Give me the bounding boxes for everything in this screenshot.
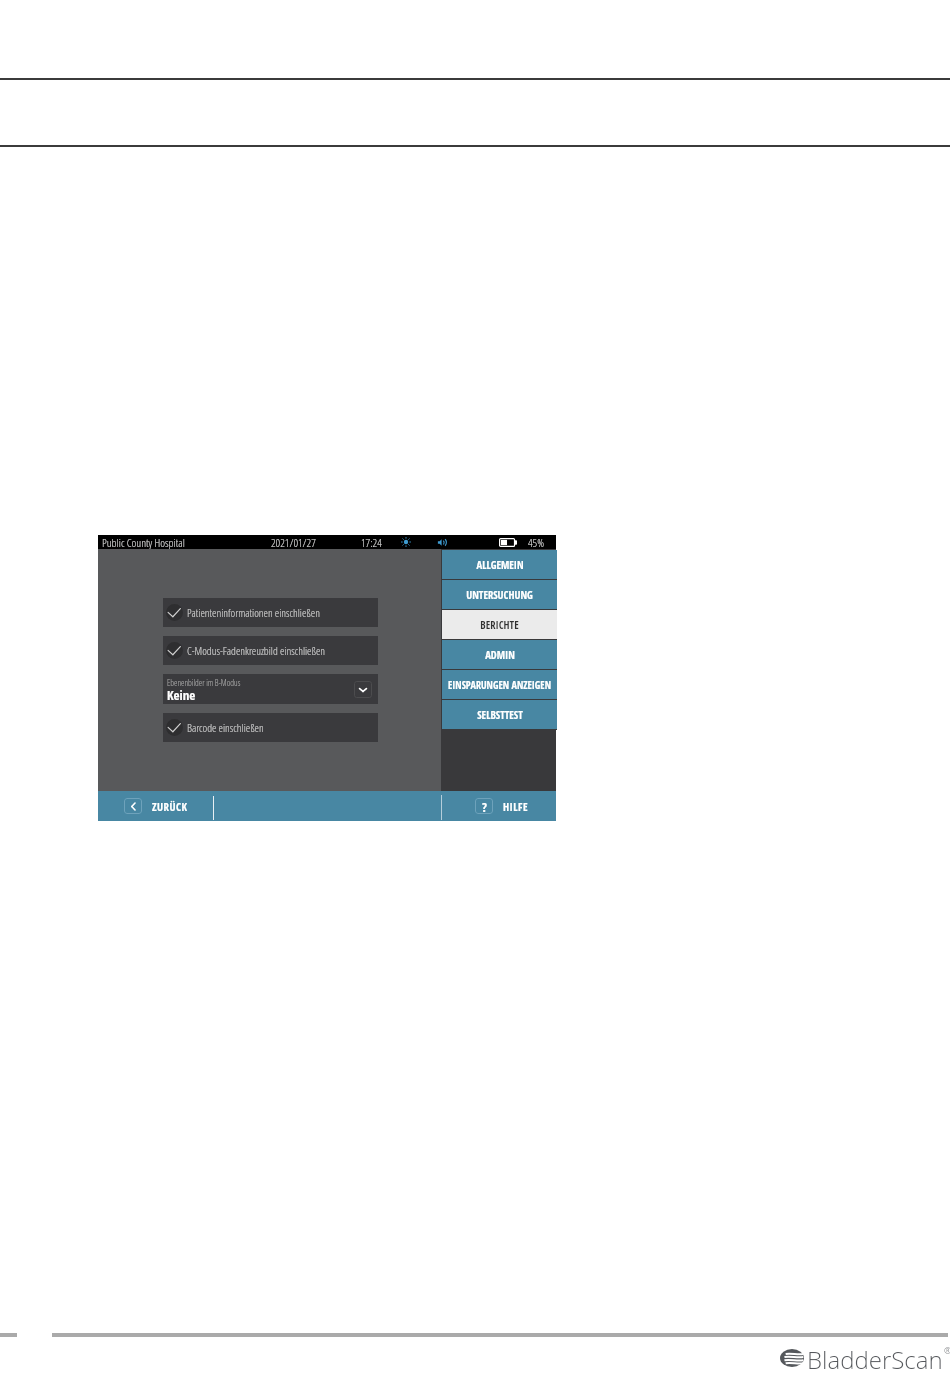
button[interactable]: Barcode einschließen [163, 713, 378, 742]
button[interactable]: EINSPARUNGEN ANZEIGEN [442, 670, 557, 700]
staticText: ? [482, 798, 487, 814]
staticText: UNTERSUCHUNG [466, 588, 533, 602]
staticText: Patienteninformationen einschließen [187, 605, 320, 620]
staticText: C-Modus-Fadenkreuzbild einschließen [187, 643, 326, 658]
staticText: Public County Hospital [102, 535, 185, 549]
staticText: Ebenenbilder im B-Modus [167, 677, 241, 689]
staticText: Keine [167, 686, 196, 704]
button[interactable]: ALLGEMEIN [442, 550, 557, 580]
staticText: ADMIN [485, 648, 515, 662]
staticText: Barcode einschließen [187, 720, 264, 735]
button[interactable]: ? [469, 791, 534, 821]
button[interactable]: SELBSTTEST [442, 700, 557, 730]
button[interactable]: C-Modus-Fadenkreuzbild einschließen [163, 636, 378, 665]
staticText: HILFE [503, 799, 528, 814]
button[interactable]: UNTERSUCHUNG [442, 580, 557, 610]
button[interactable]: BERICHTE [442, 610, 557, 640]
button[interactable]: Dropdown öffnen [354, 681, 372, 698]
staticText: ZURÜCK [152, 799, 188, 814]
button[interactable]: ZURÜCK [118, 791, 194, 821]
staticText: BERICHTE [480, 618, 519, 632]
staticText: ® [944, 1344, 950, 1356]
staticText: SELBSTTEST [477, 708, 523, 722]
staticText: EINSPARUNGEN ANZEIGEN [448, 678, 551, 692]
button[interactable]: ADMIN [442, 640, 557, 670]
staticText: ALLGEMEIN [476, 558, 524, 572]
staticText: BladderScan [807, 1343, 943, 1376]
button[interactable]: Ebenenbilder im B-Modus [163, 674, 378, 704]
staticText: 45% [528, 535, 544, 549]
staticText: 17:24 [361, 535, 382, 549]
button[interactable]: Patienteninformationen einschließen [163, 598, 378, 627]
staticText: 2021/01/27 [271, 535, 316, 549]
